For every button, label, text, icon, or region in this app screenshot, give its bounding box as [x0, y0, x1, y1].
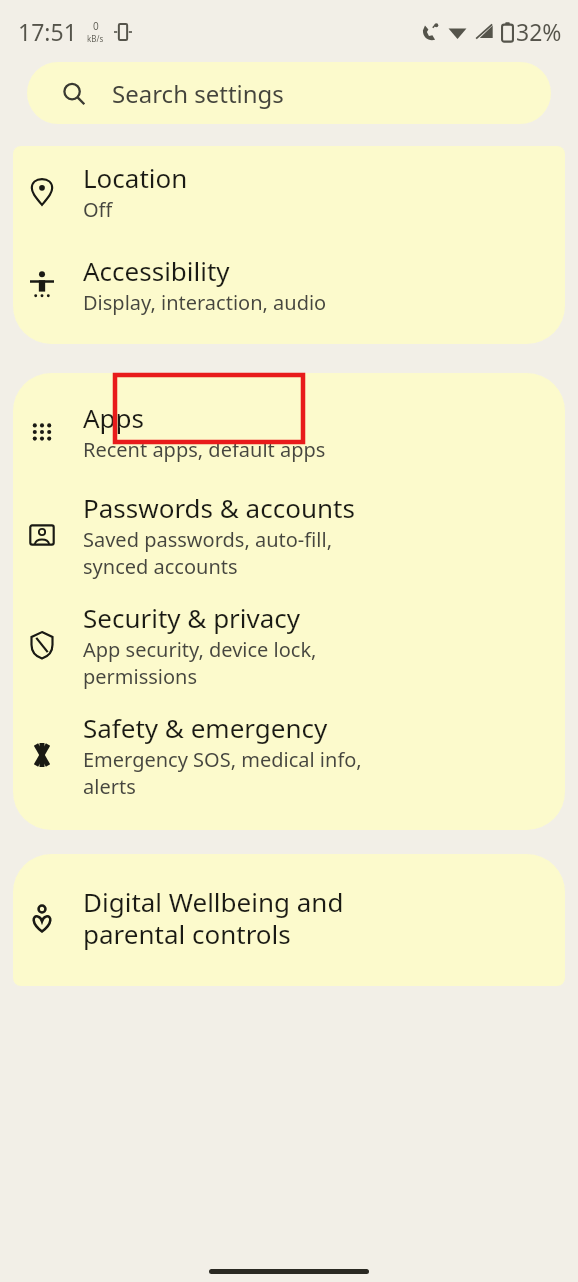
- staticText: Search settings: [112, 77, 284, 110]
- staticText: Digital Wellbeing and parental controls: [83, 884, 344, 952]
- button[interactable]: Apps: [13, 400, 565, 463]
- button[interactable]: Search: [27, 62, 551, 124]
- staticText: Emergency SOS, medical info, alerts: [83, 746, 362, 800]
- staticText: Saved passwords, auto-fill, synced accou…: [83, 526, 332, 580]
- staticText: Display, interaction, audio: [83, 289, 327, 316]
- staticText: Safety & emergency: [83, 710, 328, 745]
- staticText: Accessibility: [83, 253, 230, 288]
- staticText: Security & privacy: [83, 600, 301, 635]
- staticText: Passwords & accounts: [83, 490, 355, 525]
- staticText: Off: [83, 196, 113, 223]
- staticText: 17:51: [18, 16, 77, 47]
- staticText: App security, device lock, permissions: [83, 636, 317, 690]
- staticText: 32%: [516, 16, 562, 47]
- staticText: kB/s: [87, 33, 104, 44]
- button[interactable]: Accessibility: [13, 253, 565, 316]
- staticText: 0: [93, 19, 99, 33]
- other: Search: [62, 82, 86, 106]
- button[interactable]: Safety & emergency: [13, 710, 565, 800]
- button[interactable]: Digital Wellbeing and parental controls: [13, 884, 565, 952]
- button[interactable]: Security & privacy: [13, 600, 565, 690]
- staticText: Recent apps, default apps: [83, 436, 326, 463]
- staticText: Location: [83, 160, 188, 195]
- button[interactable]: Location: [13, 160, 565, 223]
- staticText: Apps: [83, 400, 145, 435]
- button[interactable]: Passwords & accounts: [13, 490, 565, 580]
